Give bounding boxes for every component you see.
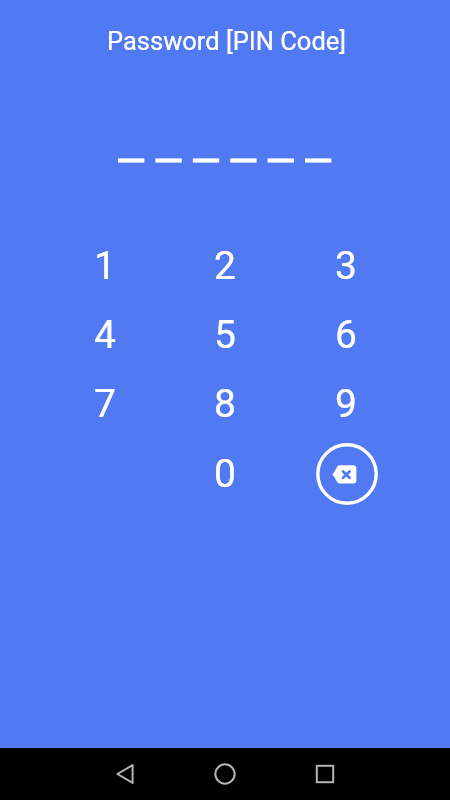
staticText: Password [PIN Code] <box>107 26 347 56</box>
button[interactable]: 6 <box>300 302 392 368</box>
button[interactable]: Home <box>201 750 249 798</box>
staticText: 6 <box>335 312 357 358</box>
staticText: 7 <box>94 381 116 427</box>
staticText: 2 <box>214 243 236 289</box>
staticText: 5 <box>214 312 236 358</box>
button[interactable]: 1 <box>59 233 151 299</box>
staticText: 9 <box>335 381 357 427</box>
button[interactable]: 9 <box>300 371 392 437</box>
button[interactable]: Recent apps <box>301 750 349 798</box>
staticText: 3 <box>335 243 357 289</box>
button[interactable]: 3 <box>300 233 392 299</box>
button[interactable]: 5 <box>179 302 271 368</box>
staticText: 0 <box>214 451 236 497</box>
staticText: 1 <box>94 243 116 289</box>
staticText: 4 <box>94 312 116 358</box>
button[interactable]: 2 <box>179 233 271 299</box>
button[interactable]: 7 <box>59 371 151 437</box>
staticText: 8 <box>214 381 236 427</box>
button[interactable]: 8 <box>179 371 271 437</box>
button[interactable]: Back <box>101 750 149 798</box>
button[interactable]: 0 <box>179 441 271 507</box>
button[interactable]: Backspace <box>313 440 381 508</box>
button[interactable]: 4 <box>59 302 151 368</box>
